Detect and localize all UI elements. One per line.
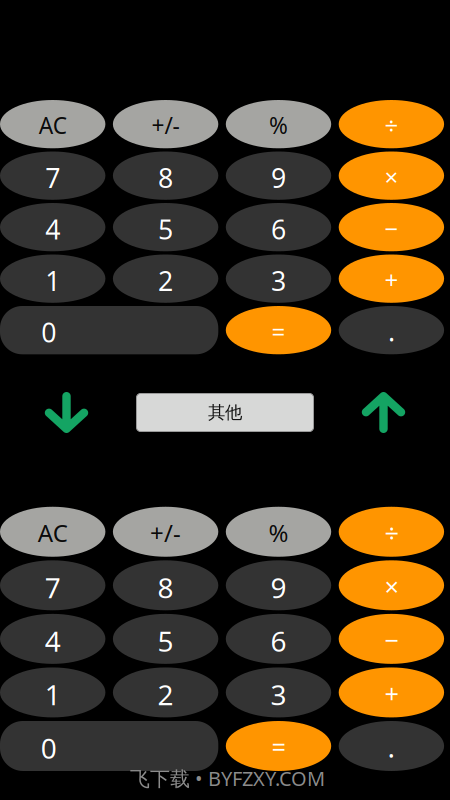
- staticText: +/-: [152, 110, 180, 140]
- button[interactable]: 0: [0, 306, 218, 354]
- button[interactable]: 5: [113, 614, 218, 664]
- button[interactable]: ×: [339, 151, 444, 200]
- staticText: 6: [271, 211, 286, 247]
- staticText: ×: [384, 569, 398, 603]
- staticText: 2: [158, 263, 173, 298]
- button[interactable]: 其他: [136, 393, 313, 431]
- button[interactable]: 7: [0, 560, 105, 610]
- staticText: 3: [270, 676, 286, 713]
- button[interactable]: −: [339, 203, 444, 251]
- button[interactable]: .: [339, 721, 444, 771]
- button[interactable]: 6: [226, 614, 331, 664]
- button[interactable]: 4: [0, 614, 105, 664]
- button[interactable]: 1: [0, 667, 105, 717]
- staticText: 8: [158, 569, 174, 606]
- staticText: .: [388, 313, 395, 349]
- staticText: 1: [45, 263, 60, 298]
- button[interactable]: 7: [0, 151, 105, 200]
- staticText: ÷: [384, 516, 398, 549]
- button[interactable]: Move up: [339, 392, 427, 433]
- staticText: ×: [384, 161, 398, 193]
- staticText: ÷: [384, 109, 398, 141]
- staticText: −: [384, 212, 398, 244]
- staticText: 0: [41, 314, 56, 350]
- staticText: 3: [271, 263, 286, 298]
- button[interactable]: 8: [113, 560, 218, 610]
- button[interactable]: 3: [226, 667, 331, 717]
- staticText: AC: [39, 110, 67, 140]
- button[interactable]: 8: [113, 151, 218, 200]
- staticText: .: [387, 728, 395, 766]
- staticText: 8: [158, 160, 173, 195]
- button[interactable]: 9: [226, 151, 331, 200]
- staticText: 5: [158, 211, 173, 247]
- staticText: −: [384, 623, 398, 657]
- staticText: 0: [41, 729, 57, 767]
- staticText: 7: [45, 569, 61, 606]
- staticText: =: [271, 315, 285, 347]
- button[interactable]: 3: [226, 254, 331, 303]
- button[interactable]: =: [226, 721, 331, 771]
- button[interactable]: 1: [0, 254, 105, 303]
- button[interactable]: =: [226, 306, 331, 354]
- button[interactable]: 6: [226, 203, 331, 251]
- button[interactable]: AC: [0, 100, 105, 148]
- button[interactable]: %: [226, 100, 331, 148]
- button[interactable]: 0: [0, 721, 218, 771]
- staticText: =: [271, 730, 285, 764]
- staticText: %: [269, 110, 288, 140]
- button[interactable]: 5: [113, 203, 218, 251]
- button[interactable]: +: [339, 254, 444, 303]
- button[interactable]: ÷: [339, 100, 444, 148]
- staticText: 9: [270, 569, 286, 606]
- staticText: 7: [45, 160, 60, 195]
- staticText: +: [384, 677, 398, 710]
- button[interactable]: %: [226, 507, 331, 557]
- staticText: 4: [45, 211, 60, 247]
- button[interactable]: 2: [113, 254, 218, 303]
- staticText: 2: [158, 676, 174, 713]
- staticText: +/-: [150, 517, 181, 549]
- button[interactable]: +/-: [113, 100, 218, 148]
- button[interactable]: Move down: [22, 392, 110, 433]
- staticText: 飞下载 • BYFZXY.COM: [130, 765, 325, 792]
- button[interactable]: AC: [0, 507, 105, 557]
- staticText: AC: [38, 517, 68, 549]
- staticText: 1: [45, 676, 61, 713]
- staticText: +: [384, 264, 398, 296]
- staticText: %: [268, 517, 288, 549]
- button[interactable]: ×: [339, 560, 444, 610]
- button[interactable]: +/-: [113, 507, 218, 557]
- button[interactable]: −: [339, 614, 444, 664]
- button[interactable]: +: [339, 667, 444, 717]
- staticText: 6: [270, 622, 286, 659]
- staticText: 4: [45, 622, 61, 659]
- button[interactable]: 9: [226, 560, 331, 610]
- button[interactable]: 2: [113, 667, 218, 717]
- staticText: 其他: [208, 402, 242, 423]
- button[interactable]: ÷: [339, 507, 444, 557]
- staticText: 9: [271, 160, 286, 195]
- staticText: 5: [158, 622, 174, 659]
- button[interactable]: .: [339, 306, 444, 354]
- button[interactable]: 4: [0, 203, 105, 251]
